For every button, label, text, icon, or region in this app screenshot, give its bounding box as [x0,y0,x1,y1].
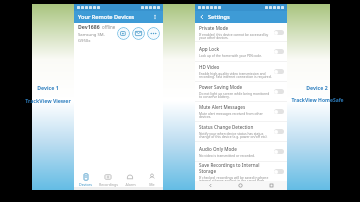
staticText: Save Recordings to Internal Storage [199,162,272,174]
button[interactable]: Video call [117,27,130,40]
button[interactable]: Save Recordings to Internal Storage togg… [274,169,284,174]
button[interactable]: Back [198,13,206,21]
button[interactable]: Audio Only Mode toggle [274,149,284,154]
button[interactable]: Audio Only Mode [195,142,287,161]
button[interactable]: Messages [132,27,145,40]
button[interactable]: Dev1686 [74,23,163,43]
staticText: Lock up of the home with your PIN code. [199,53,262,57]
staticText: Notify your when device status has statu… [199,131,272,139]
button[interactable]: Mute Alert Messages toggle [274,109,284,114]
button[interactable]: App Lock [195,42,287,61]
button[interactable]: Status Change Detection toggle [274,129,284,134]
staticText: Private Mode [199,25,229,31]
staticText: Your Remote Devices [78,13,135,21]
staticText: Alarm [125,182,136,187]
staticText: Mute alert messages received from other … [199,111,272,119]
button[interactable]: Power Saving Mode toggle [274,89,284,94]
button[interactable]: Recordings [97,171,119,187]
button[interactable]: Private Mode [195,23,287,41]
button[interactable]: Recents [256,181,287,190]
staticText: No video is transmitted or recorded. [199,153,255,157]
button[interactable]: Alarm [119,171,141,187]
staticText: Power Saving Mode [199,84,243,90]
staticText: App Lock [199,46,219,52]
staticText: Samsung SM-G950x [78,32,117,43]
button[interactable]: HD Video [195,62,287,81]
staticText: If enabled, this device cannot be access… [199,32,272,40]
staticText: Settings [208,13,230,21]
button[interactable]: Power Saving Mode [195,82,287,101]
button[interactable]: HD Video toggle [274,69,284,74]
staticText: TrackView HomeSafe [291,97,344,104]
button[interactable]: More [147,27,160,40]
staticText: Me [149,182,155,187]
button[interactable]: Private Mode toggle [274,30,284,35]
staticText: HD Video [199,64,220,70]
button[interactable]: More options [151,13,159,21]
staticText: Recordings [99,182,118,187]
button[interactable]: Status Change Detection [195,122,287,141]
button[interactable]: Back [195,181,225,190]
button[interactable]: App Lock toggle [274,49,284,54]
staticText: TrackView Viewer [25,97,71,104]
staticText: Do not light up screen while being monit… [199,91,272,99]
staticText: Device 2 [306,84,328,91]
button[interactable]: Mute Alert Messages [195,102,287,121]
button[interactable]: Your Remote Devices [74,11,163,23]
button[interactable]: Me [141,171,163,187]
staticText: Mute Alert Messages [199,104,246,110]
staticText: Devices [79,182,92,187]
staticText: If checked, recordings will be saved in … [199,175,272,181]
staticText: Enable high-quality video transmission a… [199,71,272,79]
staticText: offline [102,24,116,30]
button[interactable]: Devices [74,171,97,187]
button[interactable]: Home [225,181,256,190]
button[interactable]: Save Recordings to Internal Storage [195,162,287,181]
staticText: Status Change Detection [199,124,254,130]
staticText: Dev1686 [78,23,100,30]
staticText: Audio Only Mode [199,146,237,152]
staticText: Device 1 [37,84,59,91]
